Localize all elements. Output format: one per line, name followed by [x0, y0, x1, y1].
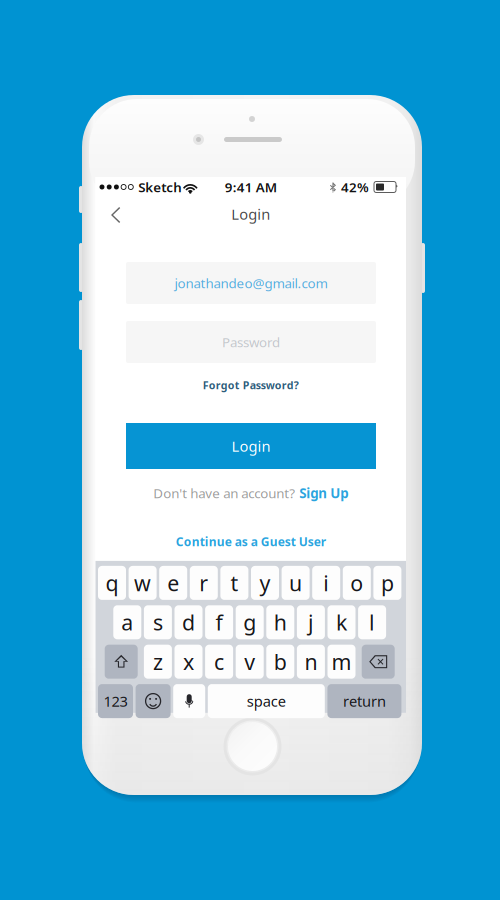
staticText: Login: [231, 436, 270, 456]
staticText: i: [323, 569, 329, 597]
button[interactable]: k: [327, 605, 355, 639]
staticText: j: [308, 608, 314, 636]
staticText: g: [243, 608, 256, 636]
button[interactable]: return: [327, 684, 401, 718]
button[interactable]: space: [208, 684, 325, 718]
staticText: n: [304, 647, 317, 676]
staticText: t: [230, 569, 238, 597]
button[interactable]: h: [266, 605, 294, 639]
staticText: k: [336, 608, 347, 636]
button[interactable]: Back: [98, 198, 132, 232]
button[interactable]: u: [282, 566, 310, 600]
staticText: s: [153, 608, 163, 636]
button[interactable]: q: [98, 566, 126, 600]
staticText: Login: [231, 204, 270, 224]
button[interactable]: [105, 645, 138, 679]
button[interactable]: x: [174, 645, 202, 679]
staticText: d: [182, 608, 195, 636]
staticText: e: [167, 569, 179, 597]
button[interactable]: [136, 684, 171, 718]
button[interactable]: p: [373, 566, 401, 600]
button[interactable]: e: [159, 566, 187, 600]
staticText: 123: [103, 691, 127, 711]
button[interactable]: g: [236, 605, 264, 639]
button[interactable]: f: [205, 605, 233, 639]
button[interactable]: v: [236, 645, 264, 679]
staticText: Forgot Password?: [203, 378, 299, 392]
button[interactable]: Sign Up: [299, 484, 348, 502]
staticText: p: [381, 569, 394, 597]
staticText: x: [183, 647, 194, 676]
staticText: space: [247, 691, 286, 711]
staticText: Sketch: [138, 178, 182, 196]
staticText: b: [274, 647, 287, 676]
staticText: q: [105, 569, 118, 597]
staticText: 9:41 AM: [225, 178, 277, 196]
button[interactable]: b: [266, 645, 294, 679]
button[interactable]: a: [113, 605, 141, 639]
staticText: c: [214, 647, 224, 676]
staticText: 42%: [341, 178, 369, 196]
staticText: y: [259, 569, 270, 597]
button[interactable]: r: [190, 566, 218, 600]
staticText: o: [350, 569, 363, 597]
staticText: a: [121, 608, 133, 636]
staticText: Sign Up: [299, 484, 348, 502]
staticText: z: [153, 647, 163, 676]
button[interactable]: Forgot Password?: [95, 377, 406, 393]
button[interactable]: w: [129, 566, 157, 600]
staticText: jonathandeo@gmail.com: [174, 274, 327, 292]
button[interactable]: z: [144, 645, 172, 679]
button[interactable]: y: [251, 566, 279, 600]
button[interactable]: j: [297, 605, 325, 639]
button[interactable]: l: [358, 605, 386, 639]
button[interactable]: t: [220, 566, 248, 600]
staticText: h: [274, 608, 287, 636]
staticText: m: [331, 647, 351, 676]
button[interactable]: d: [174, 605, 202, 639]
staticText: Password: [222, 333, 280, 351]
button[interactable]: s: [144, 605, 172, 639]
staticText: r: [199, 569, 208, 597]
button[interactable]: Dictation: [173, 684, 205, 718]
staticText: return: [343, 691, 386, 711]
button[interactable]: i: [312, 566, 340, 600]
button[interactable]: [362, 645, 395, 679]
staticText: l: [369, 608, 375, 636]
button[interactable]: Login: [126, 423, 376, 469]
staticText: Don't have an account?: [153, 484, 295, 502]
button[interactable]: m: [327, 645, 355, 679]
staticText: f: [216, 608, 223, 636]
staticText: v: [244, 647, 255, 676]
button[interactable]: n: [297, 645, 325, 679]
button[interactable]: c: [205, 645, 233, 679]
staticText: Continue as a Guest User: [176, 533, 326, 549]
button[interactable]: 123: [98, 684, 133, 718]
staticText: u: [289, 569, 302, 597]
button[interactable]: Continue as a Guest User: [95, 533, 406, 549]
staticText: w: [134, 569, 151, 597]
button[interactable]: o: [343, 566, 371, 600]
